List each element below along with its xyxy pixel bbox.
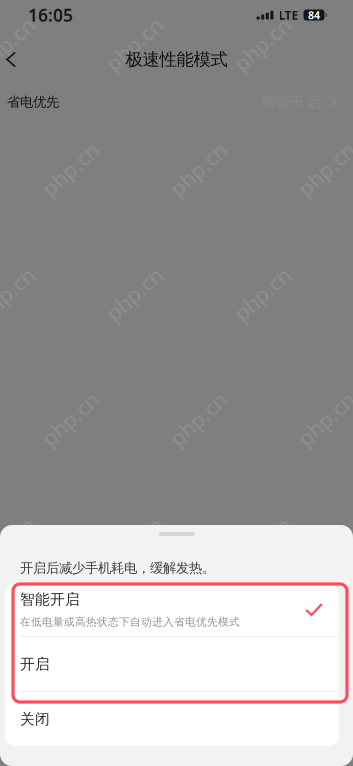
staticText: 开启 bbox=[20, 655, 50, 673]
staticText: php.cn bbox=[0, 30, 40, 58]
staticText: php.cn bbox=[100, 530, 168, 558]
staticText: 16:05 bbox=[28, 3, 73, 26]
staticText: php.cn bbox=[100, 280, 168, 308]
staticText: 84 bbox=[308, 8, 320, 22]
staticText: php.cn bbox=[36, 155, 104, 183]
staticText: 关闭 bbox=[20, 710, 50, 728]
button[interactable]: 智能开启 bbox=[5, 583, 339, 636]
staticText: php.cn bbox=[164, 405, 232, 433]
button[interactable]: 开启 bbox=[5, 637, 339, 691]
staticText: 智能开启 bbox=[20, 590, 80, 608]
staticText: php.cn bbox=[0, 530, 40, 558]
staticText: php.cn bbox=[100, 30, 168, 58]
staticText: php.cn bbox=[228, 280, 296, 308]
staticText: php.cn bbox=[36, 655, 104, 683]
staticText: LTE bbox=[278, 7, 298, 23]
button[interactable]: Back bbox=[0, 40, 34, 78]
staticText: php.cn bbox=[36, 405, 104, 433]
staticText: php.cn bbox=[0, 280, 40, 308]
staticText: 开启后减少手机耗电，缓解发热。 bbox=[20, 560, 215, 576]
staticText: 极速性能模式 bbox=[125, 49, 227, 70]
staticText: php.cn bbox=[164, 155, 232, 183]
staticText: 省电优先 bbox=[7, 94, 59, 110]
staticText: php.cn bbox=[292, 405, 353, 433]
staticText: php.cn bbox=[292, 655, 353, 683]
button[interactable]: 关闭 bbox=[5, 692, 339, 746]
button[interactable]: 省电优先 bbox=[0, 87, 353, 117]
staticText: 智能开启 bbox=[261, 93, 321, 111]
staticText: 在低电量或高热状态下自动进入省电优先模式 bbox=[20, 615, 240, 629]
staticText: php.cn bbox=[292, 155, 353, 183]
staticText: php.cn bbox=[228, 30, 296, 58]
